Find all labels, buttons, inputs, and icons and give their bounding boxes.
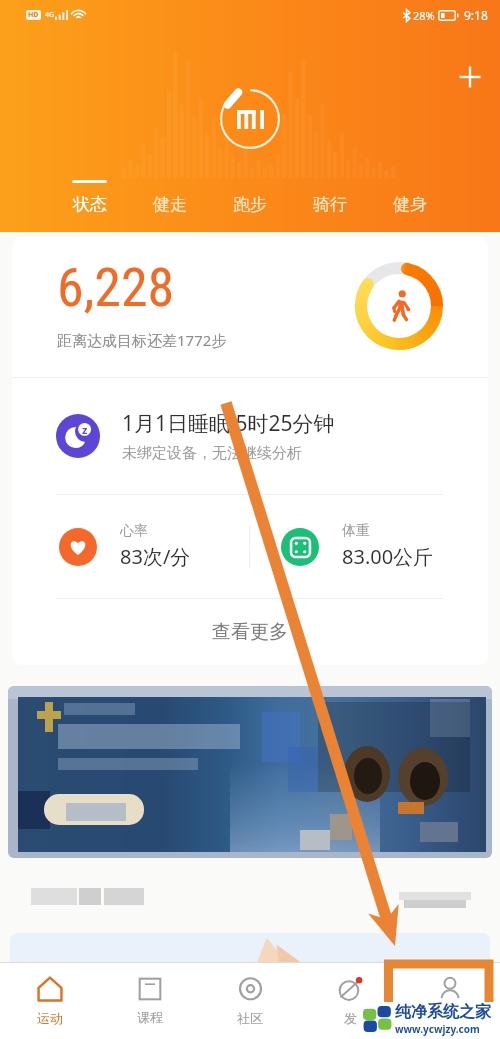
staticText: HD (28, 10, 39, 20)
staticText: 1月1日睡眠 5时25分钟 (122, 409, 335, 438)
staticText: 未绑定设备，无法继续分析 (122, 444, 302, 463)
staticText: 6,228 (57, 256, 175, 319)
staticText: 健身 (393, 194, 427, 215)
button[interactable]: 运动 (0, 963, 100, 1039)
button[interactable]: 健走 (130, 170, 210, 225)
button[interactable]: 我的 (400, 963, 500, 1039)
staticText: 健走 (153, 194, 187, 215)
staticText: 距离达成目标还差1772步 (57, 330, 227, 350)
staticText: 心率 (120, 522, 148, 540)
button[interactable]: 发 (300, 963, 400, 1039)
staticText: 4G (45, 10, 55, 20)
staticText: 社区 (237, 1010, 263, 1026)
button[interactable]: 骑行 (290, 170, 370, 225)
button[interactable]: 健身 (370, 170, 450, 225)
staticText: 查看更多 (212, 620, 288, 644)
staticText: 骑行 (313, 194, 347, 215)
button[interactable]: 心率 (12, 495, 249, 598)
button[interactable]: Add (448, 55, 492, 99)
staticText: www.ycwjzy.com (395, 1022, 480, 1036)
staticText: 83.00公斤 (342, 543, 434, 570)
button[interactable]: 状态 (49, 170, 130, 225)
staticText: 28% (413, 8, 435, 23)
button[interactable]: 跑步 (210, 170, 290, 225)
staticText: 发 (344, 1010, 357, 1026)
staticText: 我的 (437, 1010, 463, 1026)
button[interactable] (8, 686, 492, 858)
button[interactable]: 课程 (100, 963, 200, 1039)
staticText: 体重 (342, 522, 370, 540)
staticText: 9:18 (464, 7, 488, 23)
staticText: 状态 (73, 194, 107, 215)
button[interactable]: 社区 (200, 963, 300, 1039)
staticText: 运动 (37, 1010, 63, 1026)
button[interactable]: z (12, 378, 488, 494)
button[interactable]: 体重 (250, 495, 488, 598)
button[interactable]: 查看更多 (12, 599, 488, 665)
staticText: 课程 (137, 1009, 163, 1025)
staticText: z (82, 422, 88, 437)
staticText: 跑步 (233, 194, 267, 215)
staticText: 83次/分 (120, 543, 191, 570)
staticText: 纯净系统之家 (395, 1002, 491, 1022)
